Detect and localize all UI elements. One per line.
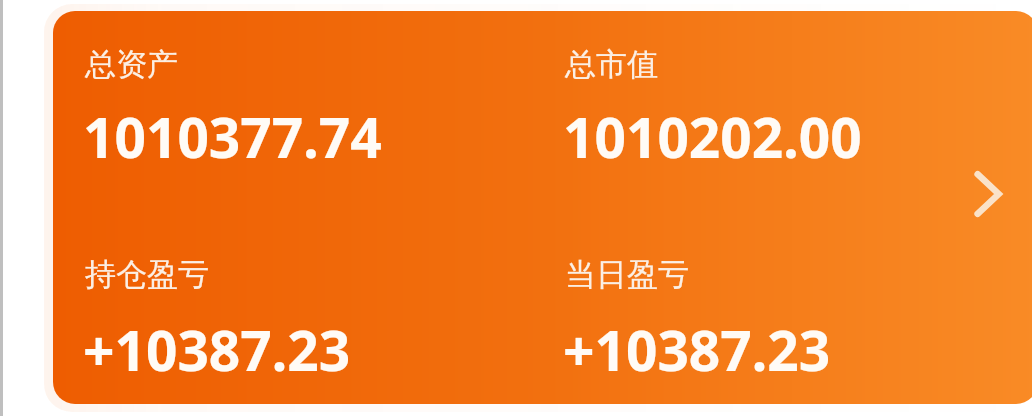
button[interactable]: 查看详情: [959, 163, 1021, 225]
staticText: 总资产: [85, 45, 178, 84]
staticText: 持仓盈亏: [85, 255, 209, 294]
staticText: +10387.23: [563, 312, 831, 387]
staticText: 1010377.74: [83, 99, 382, 174]
staticText: 1010202.00: [563, 99, 862, 174]
staticText: +10387.23: [83, 312, 351, 387]
staticText: 当日盈亏: [565, 255, 689, 294]
button[interactable]: 总资产: [53, 11, 1032, 404]
staticText: 总市值: [565, 45, 658, 84]
